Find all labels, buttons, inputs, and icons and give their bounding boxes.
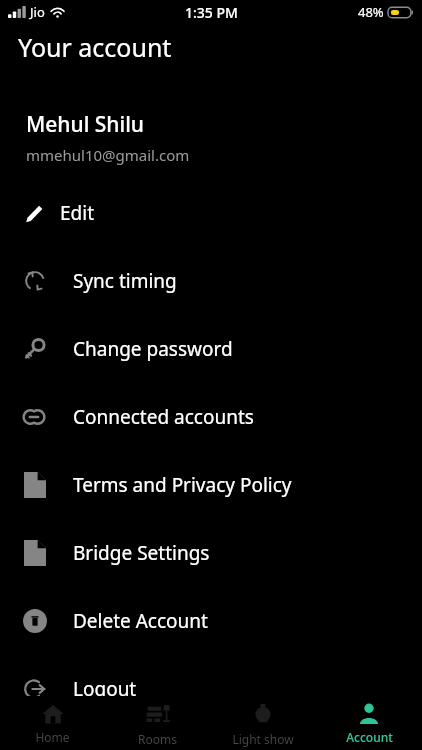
staticText: 1:35 PM — [185, 3, 238, 22]
staticText: Rooms — [138, 731, 177, 747]
button[interactable]: Bridge Settings — [0, 519, 422, 587]
button[interactable]: Logout — [0, 655, 422, 723]
staticText: Delete Account — [73, 608, 208, 634]
staticText: mmehul10@gmail.com — [26, 145, 190, 165]
button[interactable]: Light show — [210, 696, 316, 750]
staticText: Light show — [232, 731, 294, 747]
button[interactable]: Delete Account — [0, 587, 422, 655]
button[interactable]: Account — [316, 696, 422, 750]
staticText: Home — [35, 729, 70, 745]
staticText: Change password — [73, 336, 233, 362]
staticText: Terms and Privacy Policy — [73, 472, 292, 498]
staticText: Edit — [60, 200, 95, 226]
staticText: Your account — [18, 30, 172, 64]
staticText: Jio — [30, 3, 45, 21]
staticText: Account — [346, 729, 393, 745]
button[interactable]: Home — [0, 696, 105, 750]
button[interactable]: Change password — [0, 315, 422, 383]
staticText: Connected accounts — [73, 404, 254, 430]
button[interactable]: Sync timing — [0, 247, 422, 315]
button[interactable]: Rooms — [105, 696, 210, 750]
button[interactable]: Connected accounts — [0, 383, 422, 451]
staticText: Mehul Shilu — [26, 110, 145, 139]
staticText: Logout — [73, 676, 137, 702]
button[interactable]: Terms and Privacy Policy — [0, 451, 422, 519]
button[interactable]: Edit — [0, 179, 422, 247]
staticText: 48% — [358, 3, 384, 21]
staticText: Bridge Settings — [73, 540, 210, 566]
staticText: Sync timing — [73, 268, 177, 294]
